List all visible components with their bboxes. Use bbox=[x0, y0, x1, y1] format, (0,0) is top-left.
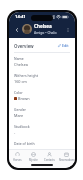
staticText: Chelsea bbox=[34, 23, 52, 29]
staticText: Name bbox=[14, 56, 24, 61]
button[interactable]: Horses bbox=[9, 150, 25, 164]
button[interactable]: Withers height bbox=[14, 70, 70, 87]
staticText: Color bbox=[14, 90, 23, 95]
staticText: Amigo • Chalo bbox=[34, 30, 57, 35]
staticText: Brown bbox=[18, 96, 30, 101]
button[interactable]: Contacts bbox=[41, 150, 58, 164]
button[interactable]: More options bbox=[63, 25, 72, 34]
button[interactable]: My site bbox=[25, 150, 41, 164]
staticText: 14:41 bbox=[15, 14, 26, 20]
button[interactable]: Horse photo bbox=[22, 24, 32, 34]
button[interactable]: Edit bbox=[57, 42, 70, 49]
staticText: My site bbox=[29, 158, 38, 162]
staticText: 160 cm bbox=[14, 79, 27, 84]
staticText: Date of birth bbox=[14, 141, 35, 146]
staticText: Horses bbox=[13, 158, 22, 162]
staticText: Chelsea bbox=[14, 62, 28, 67]
staticText: Studbook bbox=[14, 124, 30, 129]
button[interactable]: Gender bbox=[14, 104, 70, 121]
button[interactable]: Name bbox=[14, 53, 70, 70]
staticText: Gender bbox=[14, 107, 27, 112]
staticText: Reservations bbox=[59, 158, 75, 162]
button[interactable]: Back bbox=[12, 25, 21, 34]
button[interactable]: Date of birth bbox=[14, 138, 70, 149]
button[interactable]: Studbook bbox=[14, 121, 70, 138]
staticText: Contacts bbox=[44, 158, 55, 162]
button[interactable]: Color bbox=[14, 87, 70, 104]
staticText: Overview bbox=[14, 43, 34, 49]
button[interactable]: Reservations bbox=[58, 150, 75, 164]
staticText: Edit bbox=[62, 43, 69, 48]
staticText: Mare bbox=[14, 113, 24, 118]
staticText: Withers height bbox=[14, 73, 38, 78]
staticText: - bbox=[14, 130, 16, 135]
